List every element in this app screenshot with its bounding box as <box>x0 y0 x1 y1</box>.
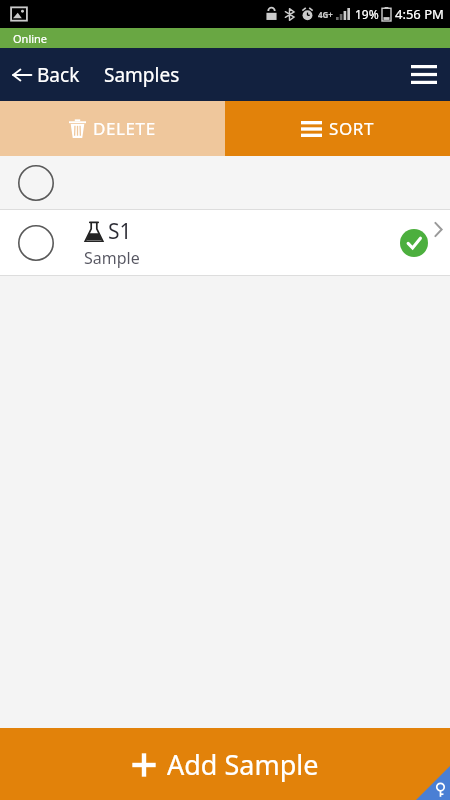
button[interactable]: Back <box>0 48 88 101</box>
button[interactable]: SORT <box>225 101 450 156</box>
staticText: 19% <box>355 6 379 22</box>
button[interactable]: Select sample S1 <box>18 225 54 261</box>
button[interactable]: Menu <box>397 48 450 101</box>
staticText: Sample <box>84 247 140 269</box>
button[interactable]: Select sample S1 <box>0 210 450 275</box>
staticText: DELETE <box>93 117 156 140</box>
button[interactable]: Select all <box>0 156 450 209</box>
button[interactable]: Add Sample <box>0 728 450 800</box>
staticText: Online <box>13 31 48 46</box>
staticText: Add Sample <box>167 746 319 783</box>
button[interactable]: DELETE <box>0 101 225 156</box>
staticText: 4:56 PM <box>395 5 444 23</box>
staticText: Samples <box>104 62 180 88</box>
staticText: 4G+ <box>318 9 333 20</box>
staticText: S1 <box>108 217 132 246</box>
staticText: Back <box>37 62 80 88</box>
staticText: SORT <box>329 117 375 140</box>
